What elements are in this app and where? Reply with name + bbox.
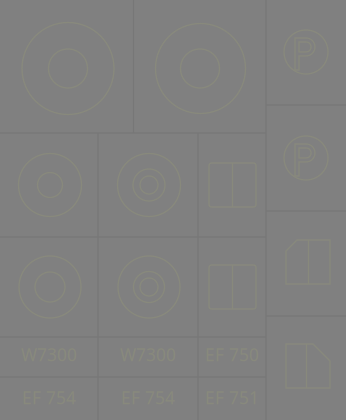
- staticText: EF 754: [121, 386, 175, 404]
- staticText: EF 750: [205, 343, 259, 361]
- staticText: W7300: [21, 343, 77, 361]
- staticText: W7300: [120, 343, 176, 361]
- staticText: EF 754: [22, 386, 76, 404]
- button[interactable]: EF 750: [198, 343, 266, 361]
